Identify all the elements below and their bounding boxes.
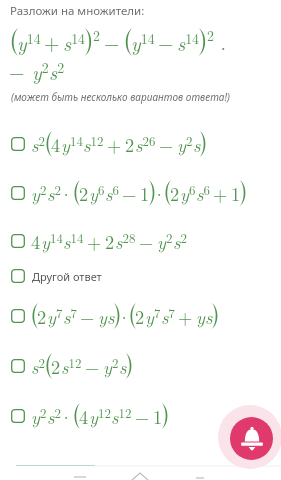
button[interactable]: s2 [0,342,281,390]
staticText: y2 [31,180,47,207]
staticText: s7 [161,303,175,330]
staticText: − [135,403,150,429]
staticText: s2 [49,57,65,86]
staticText: 1 [153,403,163,429]
staticText: 2 [125,131,135,157]
staticText: − [9,57,32,85]
staticText: s2 [173,228,187,255]
staticText: − [85,353,100,379]
staticText: · [152,180,167,206]
staticText: y2 [177,131,193,158]
staticText: s7 [63,303,77,330]
staticText: s2 [47,403,61,430]
staticText: y2 [32,57,49,86]
staticText: + [178,303,193,329]
staticText: s2 [31,131,45,158]
button[interactable]: 4 [0,219,281,263]
button[interactable]: s2 [0,120,281,168]
staticText: + [44,28,60,56]
staticText: y2 [157,228,173,255]
staticText: s [193,131,201,157]
staticText: · [59,403,74,429]
staticText: 2 [135,303,145,329]
staticText: s6 [196,180,210,207]
staticText: y7 [47,303,63,330]
staticText: s12 [83,131,104,158]
button[interactable]: y2 [0,392,281,440]
staticText: + [87,228,102,254]
staticText: y14 [41,228,63,255]
staticText: 2 [79,180,89,206]
staticText: 2 [93,25,100,45]
staticText: Разложи на множители: [10,3,145,19]
staticText: s14 [63,28,86,57]
staticText: − [80,303,95,329]
staticText: − [158,28,174,56]
staticText: Другой ответ [32,269,102,284]
staticText: y14 [61,131,83,158]
staticText: 2 [105,228,115,254]
staticText: 2 [37,303,47,329]
staticText: s26 [135,131,156,158]
staticText: s14 [63,228,84,255]
staticText: (может быть несколько вариантов ответа!) [11,90,230,104]
staticText: 4 [51,131,61,157]
staticText: y6 [180,180,196,207]
staticText: y2 [31,403,47,430]
staticText: y2 [103,353,119,380]
staticText: − [139,228,154,254]
staticText: s28 [115,228,136,255]
staticText: y7 [145,303,161,330]
staticText: · [59,180,74,206]
staticText: 2 [51,353,61,379]
staticText: 4 [79,403,89,429]
staticText: y6 [89,180,105,207]
staticText: s2 [31,353,45,380]
button[interactable]: y2 [0,169,281,217]
staticText: 1 [231,180,241,206]
staticText: ys [196,303,213,329]
staticText: y12 [89,403,111,430]
staticText: − [159,131,174,157]
staticText: + [107,131,122,157]
staticText: y14 [17,28,41,57]
staticText: s6 [105,180,119,207]
staticText: . [214,28,227,56]
staticText: s [119,353,127,379]
staticText: 2 [207,25,214,45]
button[interactable]: 2 [0,292,281,340]
staticText: s14 [177,28,200,57]
button[interactable]: Другой ответ [0,263,281,289]
staticText: 2 [170,180,180,206]
staticText: 4 [31,228,41,254]
staticText: · [117,303,132,329]
staticText: s12 [61,353,82,380]
staticText: + [213,180,228,206]
staticText: ys [98,303,115,329]
staticText: 1 [140,180,150,206]
staticText: y14 [131,28,155,57]
staticText: s12 [111,403,132,430]
staticText: − [122,180,137,206]
staticText: s2 [47,180,61,207]
staticText: − [104,28,120,56]
button[interactable]: Notifications [218,405,281,469]
